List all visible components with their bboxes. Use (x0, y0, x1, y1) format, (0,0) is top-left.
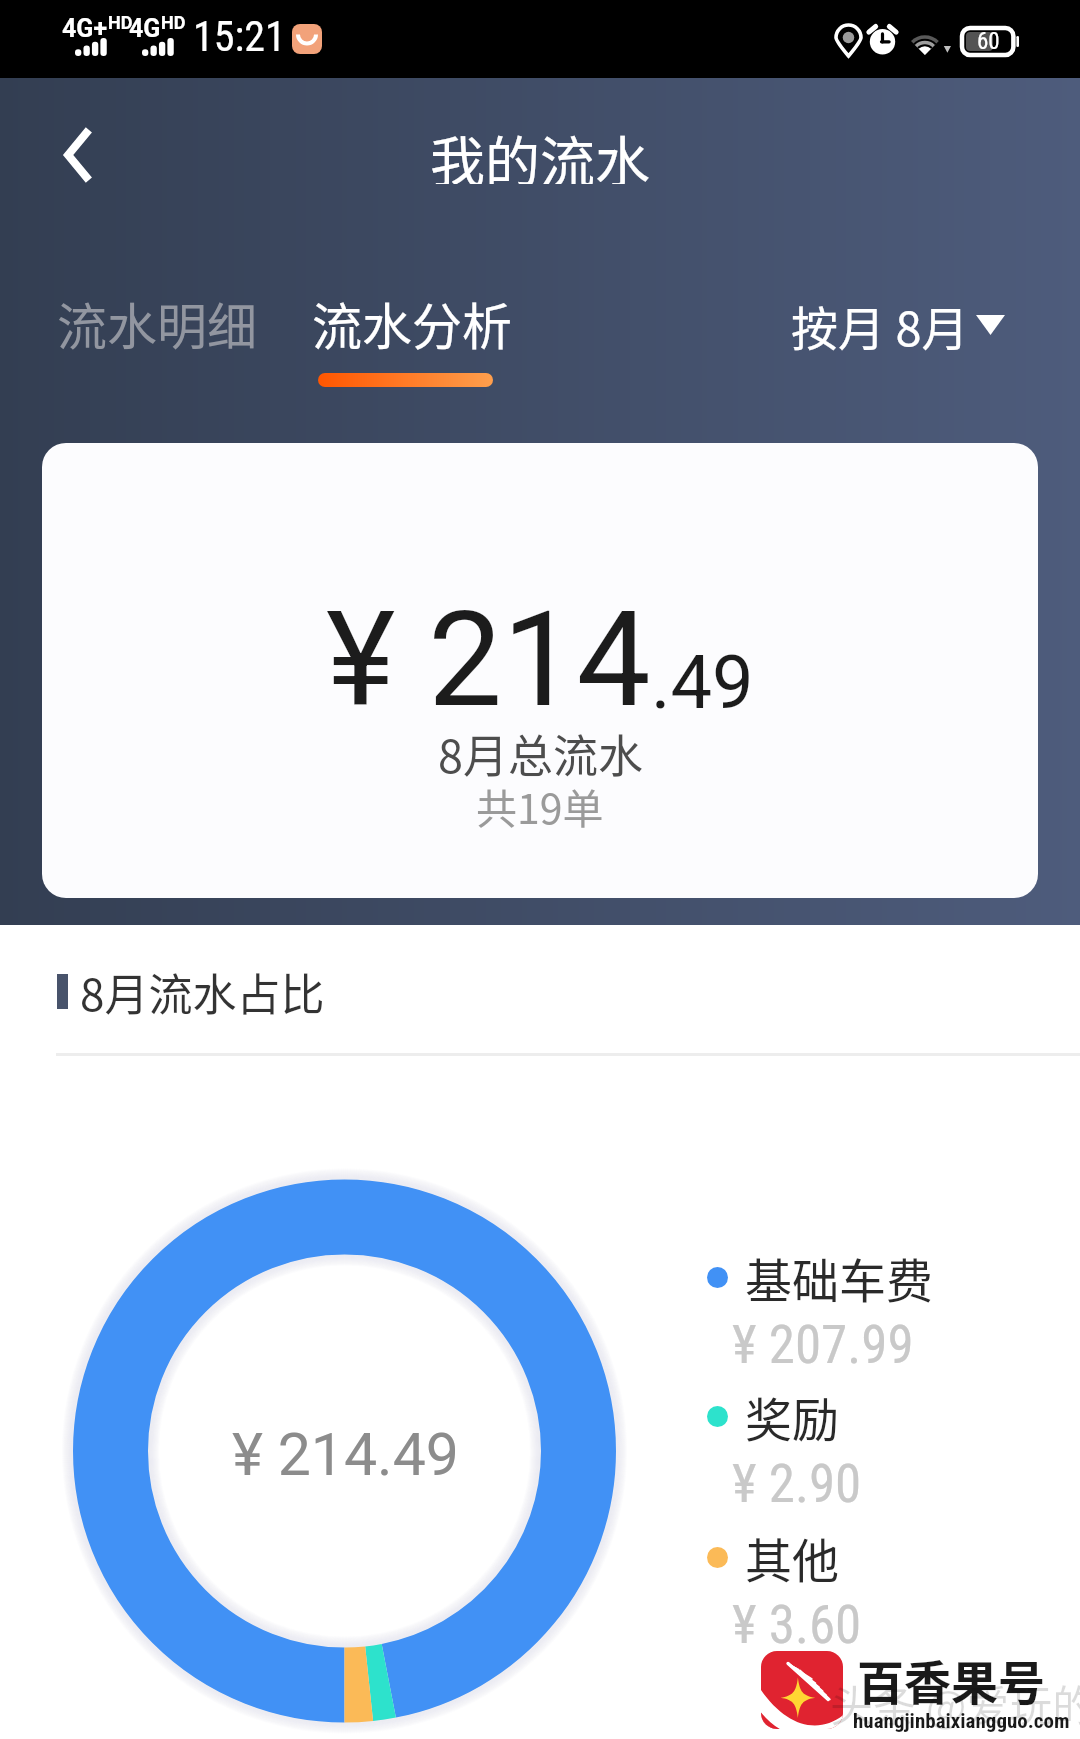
staticText: 基础车费 (745, 1243, 933, 1311)
staticText: 共19单 (476, 776, 604, 835)
staticText: 其他 (745, 1523, 839, 1591)
staticText: 我的流水 (430, 118, 651, 184)
staticText: .49 (651, 639, 754, 726)
staticText: 奖励 (745, 1382, 839, 1450)
staticText: 按月 8月 (791, 291, 969, 359)
button[interactable]: 按月 8月 (791, 291, 1005, 359)
staticText: ¥ 3.60 (732, 1594, 862, 1656)
staticText: ¥ 214.49 (232, 1420, 459, 1489)
staticText: 60 (977, 28, 1000, 55)
staticText: 8月流水占比 (80, 960, 325, 1024)
button[interactable]: Back (38, 115, 118, 195)
staticText: 流水明细 (57, 287, 257, 359)
button[interactable]: ¥ 214 (42, 443, 1038, 898)
button[interactable]: 奖励 (707, 1382, 1047, 1512)
button[interactable]: 基础车费 (707, 1243, 1047, 1373)
staticText: 4G+ (62, 14, 108, 43)
staticText: HD (108, 12, 133, 33)
staticText: 4G (129, 14, 161, 43)
button[interactable]: 其他 (707, 1523, 1047, 1653)
button[interactable]: 流水明细 (57, 287, 257, 359)
staticText: huangjinbaixiangguo.com (853, 1709, 1070, 1734)
staticText: ¥ 2.90 (732, 1453, 862, 1515)
staticText: 8月总流水 (438, 721, 643, 786)
staticText: 15:21 (193, 12, 286, 61)
staticText: 流水分析 (312, 287, 512, 359)
staticText: HD (161, 12, 186, 33)
staticText: ¥ 214 (326, 583, 651, 738)
staticText: ¥ 207.99 (732, 1314, 914, 1376)
staticText: 头条 @爱玩的FR (830, 1672, 1080, 1734)
button[interactable]: 流水分析 (312, 287, 512, 387)
staticText: 百香果号 (857, 1645, 1045, 1713)
